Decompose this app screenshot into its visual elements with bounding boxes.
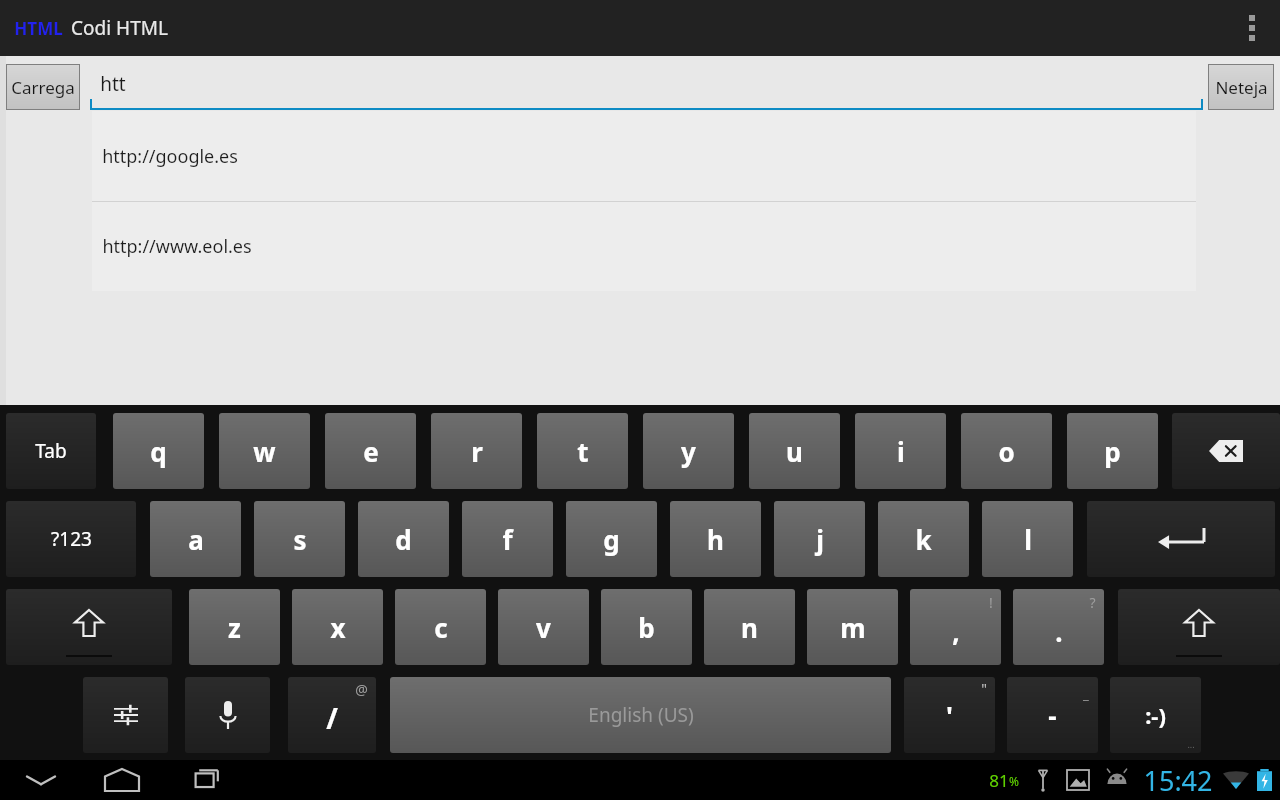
staticText: d xyxy=(395,522,412,557)
button[interactable]: Voice input xyxy=(185,677,270,753)
staticText: e xyxy=(363,434,379,469)
button[interactable]: Backspace xyxy=(1172,413,1280,489)
button[interactable]: http://google.es xyxy=(92,111,1196,201)
staticText: j xyxy=(816,522,824,557)
button[interactable]: t xyxy=(537,413,628,489)
button[interactable]: y xyxy=(643,413,734,489)
button[interactable]: Shift xyxy=(6,589,172,665)
staticText: w xyxy=(253,434,276,469)
button[interactable]: n xyxy=(704,589,795,665)
staticText: @ xyxy=(355,680,368,699)
button[interactable]: English (US) xyxy=(390,677,891,753)
staticText: s xyxy=(293,522,307,557)
staticText: HTML xyxy=(14,17,63,40)
staticText: a xyxy=(188,522,204,557)
staticText: / xyxy=(326,699,338,737)
button[interactable]: a xyxy=(150,501,241,577)
staticText: p xyxy=(1104,434,1121,469)
button[interactable]: @ xyxy=(288,677,376,753)
staticText: :-) xyxy=(1145,700,1166,730)
staticText: Carrega xyxy=(11,76,75,99)
staticText: 15:42 xyxy=(1143,762,1213,799)
button[interactable]: Recent apps xyxy=(176,760,232,800)
staticText: z xyxy=(228,610,241,645)
staticText: , xyxy=(952,614,960,649)
staticText: _ xyxy=(1083,685,1089,703)
button[interactable]: h xyxy=(670,501,761,577)
button[interactable]: v xyxy=(498,589,589,665)
staticText: c xyxy=(434,610,448,645)
staticText: v xyxy=(536,610,551,645)
staticText: Neteja xyxy=(1215,76,1268,99)
button[interactable]: j xyxy=(774,501,865,577)
staticText: u xyxy=(786,434,803,469)
staticText: " xyxy=(981,679,987,698)
button[interactable]: Input settings xyxy=(83,677,168,753)
button[interactable]: Neteja xyxy=(1209,65,1273,109)
button[interactable]: z xyxy=(189,589,280,665)
button[interactable]: c xyxy=(395,589,486,665)
staticText: Codi HTML xyxy=(71,15,168,41)
staticText: r xyxy=(471,434,483,469)
button[interactable]: ?123 xyxy=(6,501,136,577)
button[interactable]: htt xyxy=(90,64,1203,110)
staticText: http://www.eol.es xyxy=(102,234,252,259)
button[interactable]: s xyxy=(254,501,345,577)
staticText: l xyxy=(1024,522,1032,557)
button[interactable]: Shift xyxy=(1118,589,1280,665)
staticText: Tab xyxy=(35,438,67,464)
staticText: ?123 xyxy=(51,526,92,552)
button[interactable]: i xyxy=(855,413,946,489)
button[interactable]: Enter xyxy=(1087,501,1275,577)
button[interactable]: _ xyxy=(1007,677,1098,753)
button[interactable]: e xyxy=(325,413,416,489)
button[interactable]: Carrega xyxy=(7,65,79,109)
staticText: http://google.es xyxy=(102,144,238,169)
staticText: ... xyxy=(1187,738,1195,750)
staticText: o xyxy=(998,434,1015,469)
button[interactable]: b xyxy=(601,589,692,665)
button[interactable]: More options xyxy=(1224,0,1280,56)
staticText: ? xyxy=(1089,593,1096,612)
button[interactable]: :-) xyxy=(1110,677,1201,753)
staticText: f xyxy=(502,522,513,557)
button[interactable]: u xyxy=(749,413,840,489)
button[interactable]: ! xyxy=(910,589,1001,665)
staticText: y xyxy=(681,434,696,469)
staticText: q xyxy=(150,434,167,469)
staticText: - xyxy=(1048,698,1057,733)
staticText: ' xyxy=(946,698,953,733)
staticText: 81 xyxy=(989,769,1009,792)
button[interactable]: q xyxy=(113,413,204,489)
button[interactable]: Tab xyxy=(6,413,96,489)
button[interactable]: o xyxy=(961,413,1052,489)
staticText: ! xyxy=(989,593,993,612)
staticText: t xyxy=(577,434,589,469)
button[interactable]: Hide keyboard xyxy=(14,760,68,800)
button[interactable]: ? xyxy=(1013,589,1104,665)
staticText: English (US) xyxy=(588,702,694,728)
button[interactable]: w xyxy=(219,413,310,489)
staticText: g xyxy=(603,522,620,557)
button[interactable]: Home xyxy=(94,760,150,800)
staticText: x xyxy=(330,610,346,645)
staticText: % xyxy=(1009,773,1019,789)
staticText: i xyxy=(897,434,905,469)
button[interactable]: l xyxy=(982,501,1073,577)
button[interactable]: g xyxy=(566,501,657,577)
staticText: b xyxy=(638,610,655,645)
button[interactable]: p xyxy=(1067,413,1158,489)
button[interactable]: http://www.eol.es xyxy=(92,202,1196,291)
staticText: htt xyxy=(100,71,126,97)
staticText: m xyxy=(840,610,866,645)
staticText: . xyxy=(1055,614,1063,649)
staticText: n xyxy=(741,610,758,645)
button[interactable]: r xyxy=(431,413,522,489)
button[interactable]: m xyxy=(807,589,898,665)
button[interactable]: f xyxy=(462,501,553,577)
button[interactable]: " xyxy=(904,677,995,753)
button[interactable]: d xyxy=(358,501,449,577)
button[interactable]: k xyxy=(878,501,969,577)
button[interactable]: x xyxy=(292,589,383,665)
staticText: h xyxy=(707,522,724,557)
